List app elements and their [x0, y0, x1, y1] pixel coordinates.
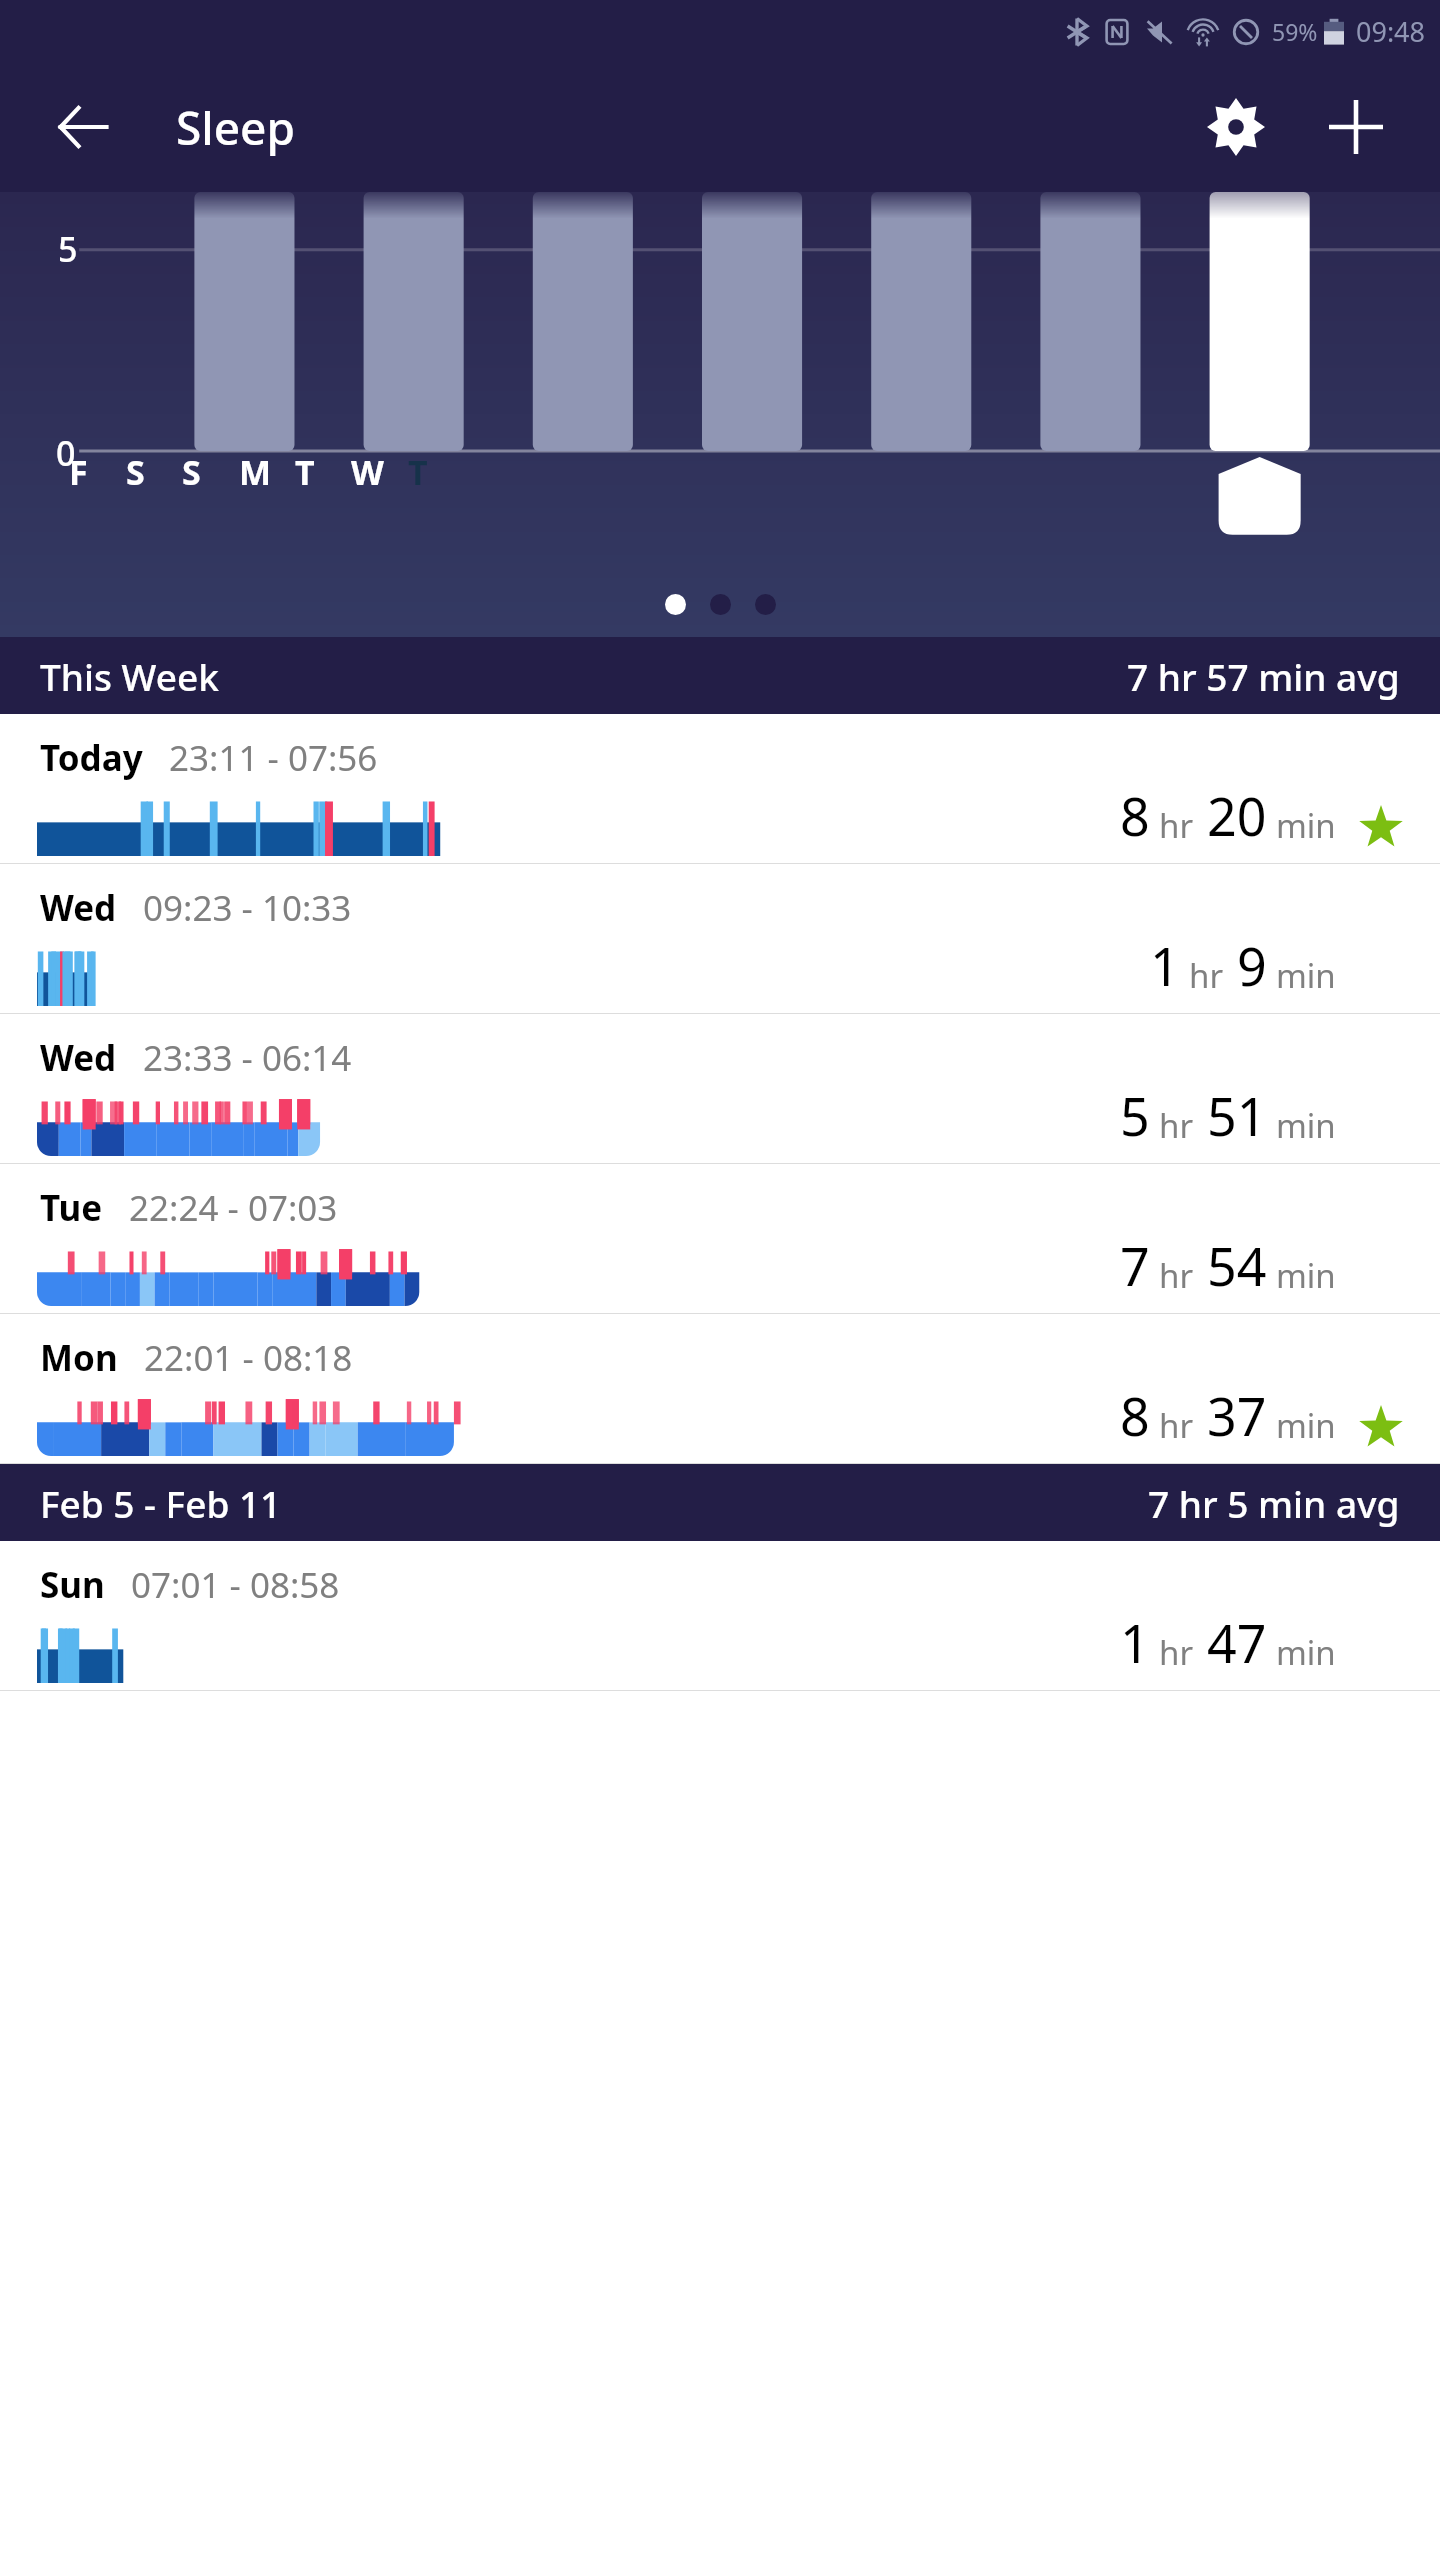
staticText: 7: [1120, 1230, 1150, 1301]
staticText: 54: [1207, 1230, 1267, 1301]
staticText: hr: [1159, 1630, 1194, 1675]
staticText: Sun: [40, 1561, 105, 1609]
staticText: hr: [1159, 1103, 1194, 1148]
staticText: Tue: [40, 1184, 103, 1232]
staticText: min: [1276, 953, 1336, 998]
staticText: 23:11 - 07:56: [169, 734, 378, 782]
button[interactable]: Wed: [0, 864, 1440, 1014]
staticText: 47: [1207, 1607, 1267, 1678]
staticText: 07:01 - 08:58: [131, 1561, 340, 1609]
staticText: Today: [40, 734, 143, 782]
staticText: 22:01 - 08:18: [144, 1334, 353, 1382]
staticText: 37: [1207, 1380, 1267, 1451]
staticText: 59%: [1272, 16, 1318, 47]
staticText: S: [126, 449, 145, 495]
button[interactable]: Sun: [0, 1541, 1440, 1691]
staticText: min: [1276, 803, 1336, 848]
staticText: 20: [1207, 780, 1267, 851]
staticText: 1: [1150, 930, 1180, 1001]
button[interactable]: Settings: [1188, 79, 1284, 175]
staticText: 22:24 - 07:03: [129, 1184, 338, 1232]
staticText: 8: [1120, 1380, 1150, 1451]
staticText: W: [351, 449, 384, 495]
staticText: 1: [1120, 1607, 1150, 1678]
staticText: Sleep: [176, 96, 296, 159]
staticText: 51: [1207, 1080, 1267, 1151]
staticText: 7 hr 5 min avg: [1148, 1478, 1400, 1528]
staticText: This Week: [40, 651, 219, 701]
staticText: min: [1276, 1253, 1336, 1298]
staticText: 23:33 - 06:14: [143, 1034, 352, 1082]
staticText: 09:23 - 10:33: [143, 884, 352, 932]
button[interactable]: Add sleep: [1308, 79, 1404, 175]
staticText: 7 hr 57 min avg: [1127, 651, 1400, 701]
button[interactable]: Wed: [0, 1014, 1440, 1164]
staticText: Wed: [40, 884, 117, 932]
staticText: 8: [1120, 780, 1150, 851]
button[interactable]: Feb 5 - Feb 11: [0, 1464, 1440, 1541]
button[interactable]: Back: [40, 84, 126, 170]
staticText: Feb 5 - Feb 11: [40, 1478, 282, 1528]
staticText: min: [1276, 1630, 1336, 1675]
staticText: min: [1276, 1403, 1336, 1448]
staticText: 09:48: [1356, 13, 1426, 50]
staticText: hr: [1159, 1403, 1194, 1448]
button[interactable]: Mon: [0, 1314, 1440, 1464]
staticText: F: [69, 449, 88, 495]
staticText: Mon: [40, 1334, 118, 1382]
staticText: 5: [58, 226, 78, 272]
staticText: hr: [1159, 1253, 1194, 1298]
staticText: T: [295, 449, 315, 495]
staticText: 5: [1120, 1080, 1150, 1151]
staticText: T: [408, 449, 428, 495]
staticText: hr: [1159, 803, 1194, 848]
staticText: min: [1276, 1103, 1336, 1148]
button[interactable]: Today: [0, 714, 1440, 864]
staticText: Wed: [40, 1034, 117, 1082]
button[interactable]: This Week: [0, 637, 1440, 714]
staticText: hr: [1189, 953, 1224, 998]
staticText: S: [182, 449, 201, 495]
staticText: 0: [56, 430, 76, 476]
staticText: M: [239, 449, 272, 495]
button[interactable]: Tue: [0, 1164, 1440, 1314]
staticText: 9: [1237, 930, 1267, 1001]
